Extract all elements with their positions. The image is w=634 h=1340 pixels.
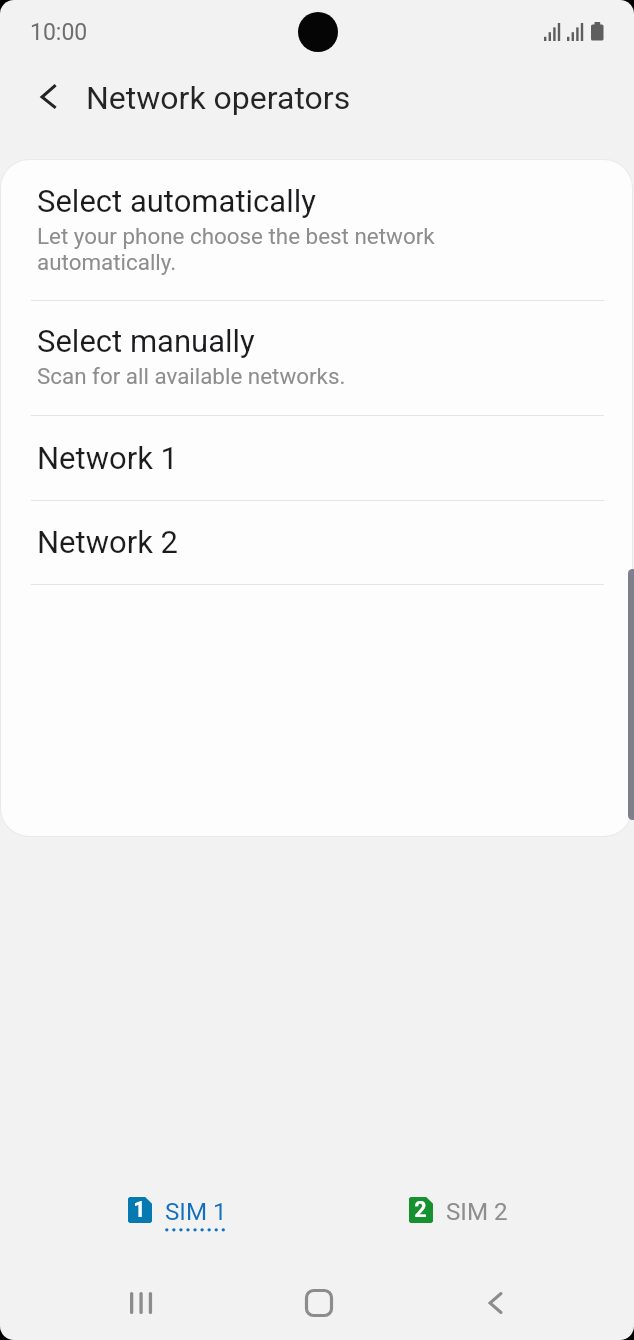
staticText: Network 1 xyxy=(37,440,178,476)
button[interactable]: Select manually xyxy=(1,300,632,415)
staticText: Let your phone choose the best network a… xyxy=(37,223,435,275)
staticText: Select manually xyxy=(37,323,255,359)
staticText: 10:00 xyxy=(30,19,88,46)
staticText: Scan for all available networks. xyxy=(37,363,346,389)
button[interactable]: Recent apps xyxy=(106,1274,178,1334)
button[interactable]: Network 2 xyxy=(1,500,632,584)
button[interactable]: Home xyxy=(283,1274,355,1334)
staticText: SIM 1 xyxy=(165,1198,227,1226)
button[interactable]: 1 xyxy=(118,1184,238,1240)
staticText: 2 xyxy=(414,1197,427,1222)
button[interactable]: 2 xyxy=(399,1184,519,1240)
button[interactable]: Back xyxy=(459,1274,531,1334)
staticText: SIM 2 xyxy=(446,1198,508,1226)
button[interactable]: Network 1 xyxy=(1,415,632,500)
staticText: Select automatically xyxy=(37,183,316,219)
staticText: 1 xyxy=(133,1197,146,1222)
button[interactable]: Back xyxy=(22,76,70,124)
staticText: Network operators xyxy=(86,79,351,117)
button[interactable]: Select automatically xyxy=(1,160,632,300)
staticText: Network 2 xyxy=(37,524,178,560)
